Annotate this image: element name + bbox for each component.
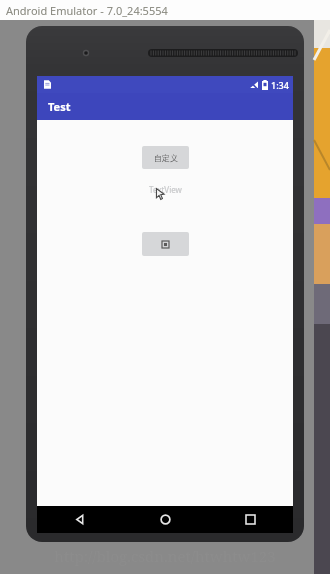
button[interactable]: Recent apps xyxy=(208,506,293,533)
button[interactable]: Back xyxy=(37,506,123,533)
button[interactable]: 自定义 xyxy=(142,146,189,169)
button[interactable]: Home xyxy=(123,506,208,533)
staticText: Android Emulator - 7.0_24:5554 xyxy=(6,3,168,18)
button[interactable]: Test xyxy=(37,93,293,120)
staticText: 1:34 xyxy=(271,79,289,91)
button[interactable]: Custom view button xyxy=(142,232,189,256)
staticText: 自定义 xyxy=(154,153,178,163)
staticText: Test xyxy=(48,99,71,114)
staticText: TextView xyxy=(149,184,182,195)
